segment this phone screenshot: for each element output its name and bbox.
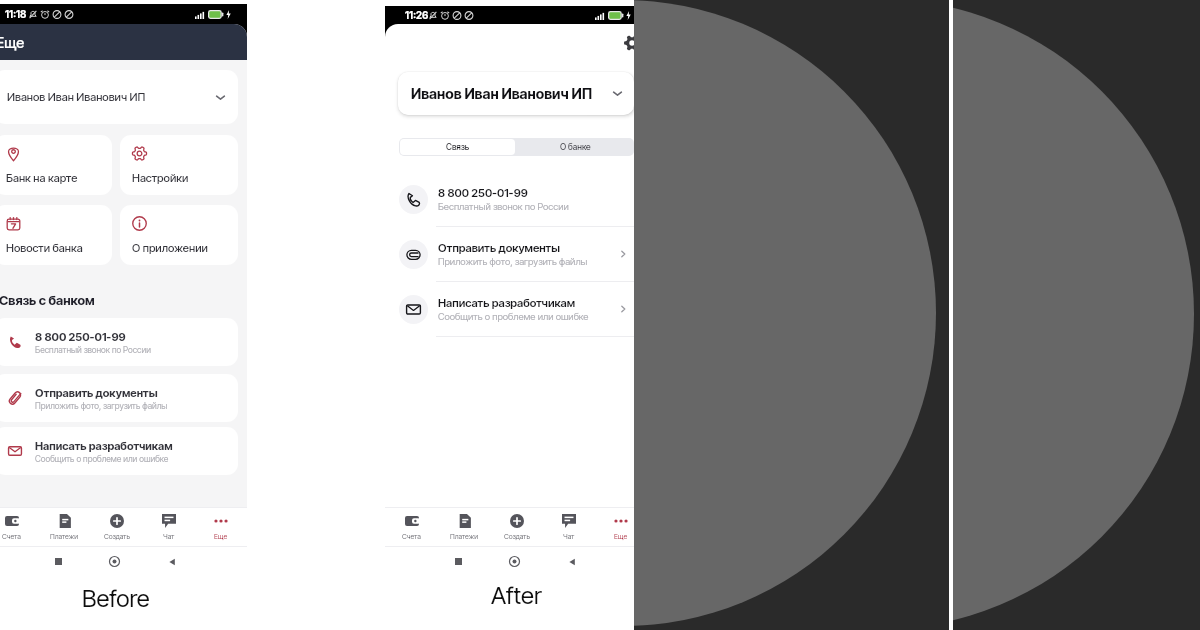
staticText: Отправить документы xyxy=(438,241,560,255)
button[interactable]: 8 800 250-01-99 xyxy=(0,318,238,366)
button[interactable]: Создать xyxy=(491,508,543,546)
staticText: Бесплатный звонок по России xyxy=(438,201,569,213)
button[interactable]: Иванов Иван Иванович ИП xyxy=(0,70,238,124)
staticText: 8 800 250-01-99 xyxy=(35,330,126,344)
staticText: 11:18 xyxy=(5,8,27,20)
staticText: Создать xyxy=(104,532,131,540)
staticText: Новости банка xyxy=(6,241,83,255)
staticText: О банке xyxy=(560,142,591,152)
button[interactable]: Отправить документы xyxy=(399,227,634,281)
button[interactable]: Чат xyxy=(543,508,595,546)
staticText: Чат xyxy=(163,532,175,540)
button[interactable]: Еще xyxy=(595,508,647,546)
staticText: Отправить документы xyxy=(35,386,158,400)
staticText: 8 800 250-01-99 xyxy=(438,186,528,200)
staticText: 11:26 xyxy=(405,9,429,21)
staticText: Написать разработчикам xyxy=(438,296,576,310)
button[interactable]: Еще xyxy=(195,508,247,546)
button[interactable]: Написать разработчикам xyxy=(0,427,238,475)
button[interactable]: 8 800 250-01-99 xyxy=(399,172,634,226)
staticText: Написать разработчикам xyxy=(35,439,173,453)
staticText: Иванов Иван Иванович ИП xyxy=(411,85,593,103)
button[interactable]: Настройки xyxy=(120,135,238,195)
staticText: Связь с банком xyxy=(0,292,95,308)
button[interactable]: Отправить документы xyxy=(0,374,238,422)
staticText: Счета xyxy=(2,532,21,540)
staticText: Приложить фото, загрузить файлы xyxy=(35,401,168,411)
staticText: Чат xyxy=(563,532,575,540)
staticText: Сообщить о проблеме или ошибке xyxy=(438,311,589,323)
button[interactable]: Платежи xyxy=(438,508,491,546)
button[interactable]: О приложении xyxy=(120,205,238,265)
staticText: Еще xyxy=(0,34,25,52)
button[interactable]: Создать xyxy=(91,508,143,546)
staticText: Создать xyxy=(504,532,531,540)
staticText: Счета xyxy=(402,532,421,540)
staticText: Настройки xyxy=(132,171,189,185)
staticText: Еще xyxy=(614,532,628,540)
staticText: О приложении xyxy=(132,241,208,255)
staticText: Банк на карте xyxy=(6,171,78,185)
button[interactable]: Новости банка xyxy=(0,205,112,265)
staticText: Сообщить о проблеме или ошибке xyxy=(35,454,169,464)
button[interactable]: Счета xyxy=(0,508,38,546)
button[interactable]: Написать разработчикам xyxy=(399,282,634,336)
staticText: Платежи xyxy=(50,532,79,540)
staticText: Еще xyxy=(214,532,228,540)
staticText: Приложить фото, загрузить файлы xyxy=(438,256,588,268)
button[interactable]: Платежи xyxy=(38,508,91,546)
button[interactable]: Settings xyxy=(624,35,640,51)
button[interactable]: Счета xyxy=(385,508,438,546)
staticText: Before xyxy=(82,584,150,613)
button[interactable]: Связь xyxy=(400,139,515,155)
button[interactable]: Чат xyxy=(143,508,195,546)
button[interactable]: Банк на карте xyxy=(0,135,112,195)
staticText: Платежи xyxy=(450,532,479,540)
button[interactable]: О банке xyxy=(516,138,634,156)
staticText: After xyxy=(491,581,542,610)
staticText: Связь xyxy=(446,142,470,152)
staticText: Бесплатный звонок по России xyxy=(35,345,151,355)
staticText: Иванов Иван Иванович ИП xyxy=(7,90,146,104)
button[interactable]: Иванов Иван Иванович ИП xyxy=(398,72,634,115)
